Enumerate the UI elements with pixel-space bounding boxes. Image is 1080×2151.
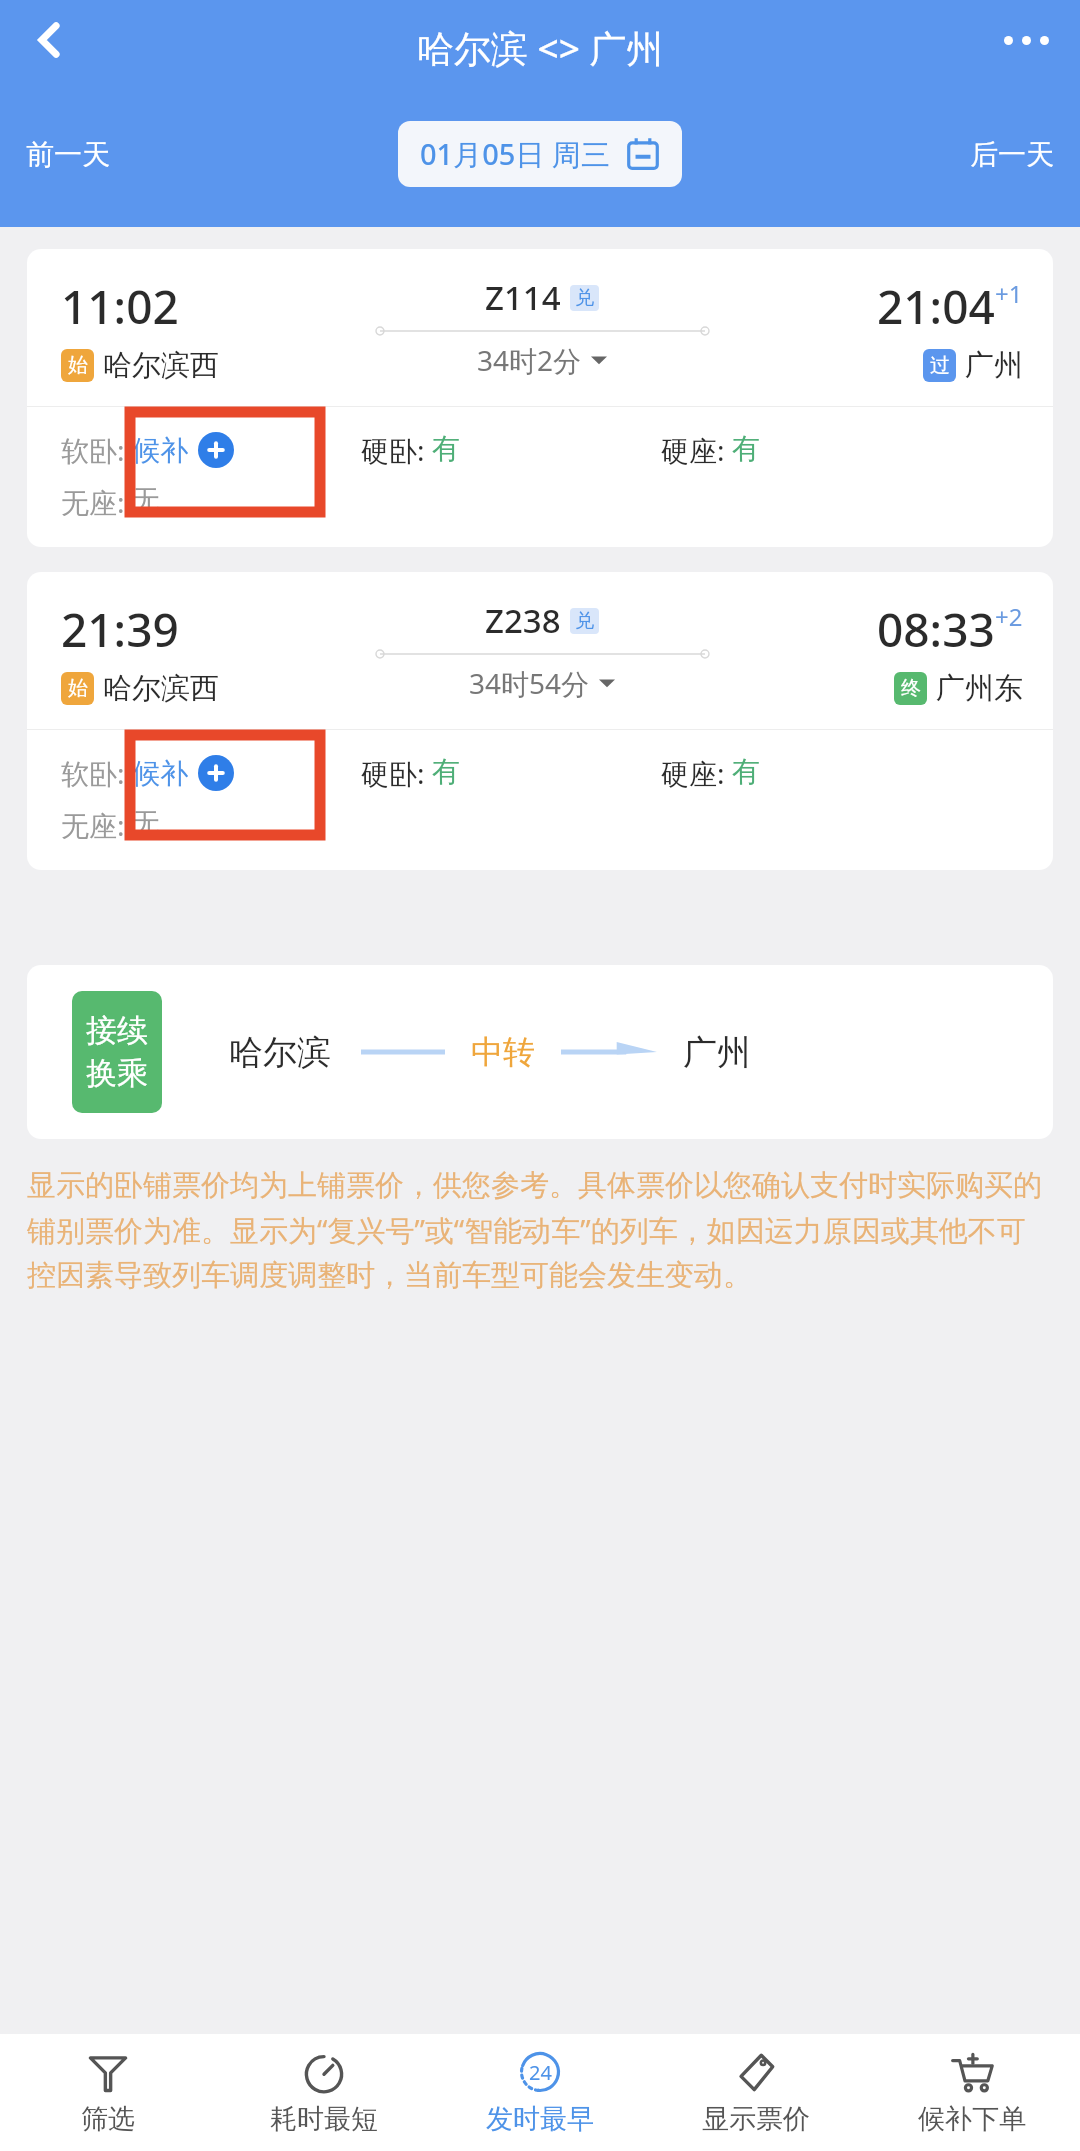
staticText: 21:04 <box>877 275 995 338</box>
staticText: 硬卧: <box>361 754 432 792</box>
button[interactable]: 21:39 <box>27 572 1053 870</box>
button[interactable]: Add to waitlist <box>198 432 234 468</box>
staticText: 前一天 <box>26 137 110 172</box>
staticText: 硬座: <box>661 754 732 792</box>
button[interactable]: More options <box>986 0 1066 80</box>
staticText: 21:39 <box>61 598 179 661</box>
button[interactable]: 耗时最短 <box>216 2034 432 2151</box>
staticText: 11:02 <box>61 275 179 338</box>
staticText: 08:33 <box>877 598 995 661</box>
staticText: 广州东 <box>936 670 1023 707</box>
staticText: 哈尔滨 <box>229 1031 331 1074</box>
staticText: 候补 <box>132 756 188 791</box>
button[interactable]: 11:02 <box>27 249 1053 547</box>
staticText: 有 <box>432 431 460 466</box>
button[interactable]: 接续 <box>27 965 1053 1139</box>
staticText: 34时2分 <box>477 341 582 379</box>
staticText: +2 <box>995 600 1023 633</box>
staticText: 显示的卧铺票价均为上铺票价，供您参考。具体票价以您确认支付时实际购买的铺别票价为… <box>27 1167 1053 1293</box>
staticText: 软卧: <box>61 754 132 792</box>
button[interactable]: 后一天 <box>970 137 1054 172</box>
staticText: 候补下单 <box>918 2102 1026 2136</box>
staticText: 显示票价 <box>702 2102 810 2136</box>
staticText: 硬卧: <box>361 431 432 469</box>
staticText: 有 <box>732 754 760 789</box>
staticText: 无座: <box>61 806 132 844</box>
staticText: 无座: <box>61 483 132 521</box>
staticText: 硬座: <box>661 431 732 469</box>
button[interactable]: 24 <box>432 2034 648 2151</box>
staticText: 发时最早 <box>486 2102 594 2136</box>
staticText: 换乘 <box>86 1054 148 1093</box>
button[interactable]: Add to waitlist <box>198 755 234 791</box>
staticText: 哈尔滨 <> 广州 <box>417 22 664 73</box>
staticText: 后一天 <box>970 137 1054 172</box>
button[interactable]: 显示票价 <box>648 2034 864 2151</box>
staticText: 始 <box>68 353 88 378</box>
staticText: 软卧: <box>61 431 132 469</box>
staticText: 24 <box>529 2059 552 2086</box>
staticText: Z238 <box>485 598 561 643</box>
staticText: 耗时最短 <box>270 2102 378 2136</box>
staticText: 兑 <box>575 609 594 633</box>
button[interactable]: 筛选 <box>0 2034 216 2151</box>
button[interactable]: 01月05日 周三 <box>398 121 682 187</box>
staticText: 哈尔滨西 <box>103 670 219 707</box>
staticText: 候补 <box>132 433 188 468</box>
staticText: 接续 <box>86 1011 148 1050</box>
button[interactable]: 候补下单 <box>864 2034 1080 2151</box>
staticText: 哈尔滨西 <box>103 347 219 384</box>
staticText: Z114 <box>485 275 561 320</box>
staticText: 34时54分 <box>469 664 590 702</box>
staticText: 中转 <box>471 1032 535 1072</box>
staticText: 01月05日 周三 <box>420 134 610 174</box>
button[interactable]: 候补 <box>132 756 188 791</box>
staticText: +1 <box>995 277 1023 310</box>
button[interactable]: 前一天 <box>26 137 398 172</box>
staticText: 有 <box>432 754 460 789</box>
staticText: 终 <box>901 676 921 701</box>
staticText: 无 <box>132 483 160 518</box>
staticText: 广州 <box>965 347 1023 384</box>
staticText: 筛选 <box>81 2102 135 2136</box>
staticText: 无 <box>132 806 160 841</box>
button[interactable]: 候补 <box>132 433 188 468</box>
staticText: 兑 <box>575 286 594 310</box>
staticText: 始 <box>68 676 88 701</box>
staticText: 有 <box>732 431 760 466</box>
button[interactable]: Back <box>10 0 90 80</box>
staticText: 过 <box>930 353 950 378</box>
staticText: 广州 <box>683 1031 751 1074</box>
